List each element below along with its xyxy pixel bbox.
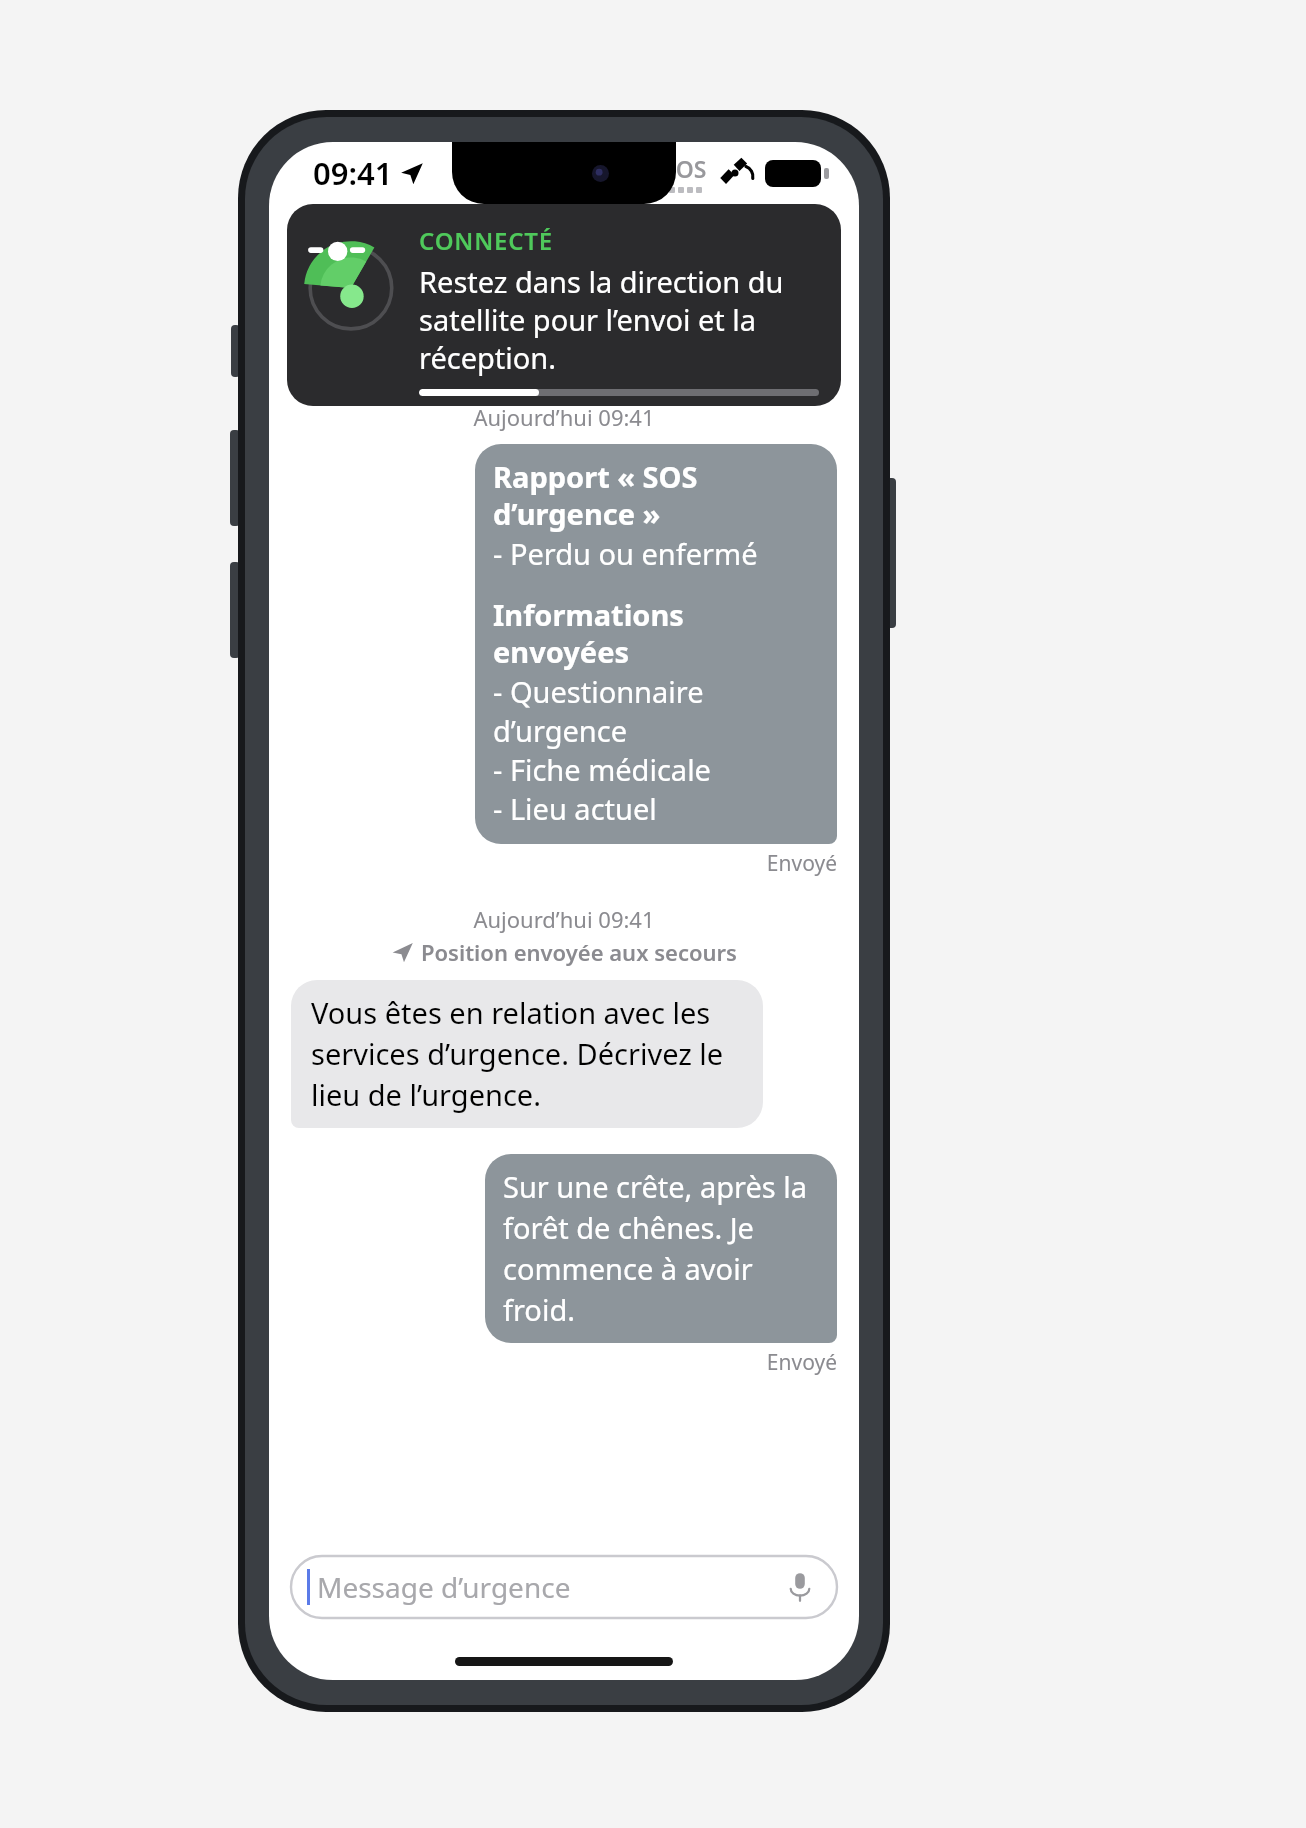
button[interactable]: Rapport « SOS d’urgence » <box>475 444 837 844</box>
staticText: SOS <box>663 153 707 184</box>
staticText: Position envoyée aux secours <box>421 937 737 967</box>
staticText: Vous êtes en relation avec les services … <box>311 993 743 1115</box>
staticText: Rapport « SOS d’urgence » <box>493 457 821 534</box>
staticText: Envoyé <box>291 1348 837 1377</box>
staticText: - Fiche médicale <box>493 750 711 789</box>
staticText: Restez dans la direction du satellite po… <box>419 262 819 377</box>
staticText: CONNECTÉ <box>419 224 553 257</box>
button[interactable]: Vous êtes en relation avec les services … <box>291 980 763 1128</box>
staticText: 09:41 <box>313 152 393 194</box>
staticText: Aujourd’hui 09:41 <box>291 904 837 934</box>
staticText: Envoyé <box>291 849 837 878</box>
button[interactable]: CONNECTÉ <box>287 204 841 406</box>
staticText: Informations envoyées <box>493 595 821 672</box>
staticText: Aujourd’hui 09:41 <box>291 402 837 432</box>
staticText: Message d’urgence <box>317 1568 571 1606</box>
button[interactable]: Message d’urgence <box>291 1556 837 1618</box>
staticText: Sur une crête, après la forêt de chênes.… <box>503 1167 819 1330</box>
button[interactable]: Sur une crête, après la forêt de chênes.… <box>485 1154 837 1343</box>
staticText: - Lieu actuel <box>493 789 657 828</box>
staticText: - Perdu ou enfermé <box>493 534 758 573</box>
button[interactable]: Dictée vocale <box>779 1566 821 1608</box>
staticText: - Questionnaire d’urgence <box>493 672 821 750</box>
